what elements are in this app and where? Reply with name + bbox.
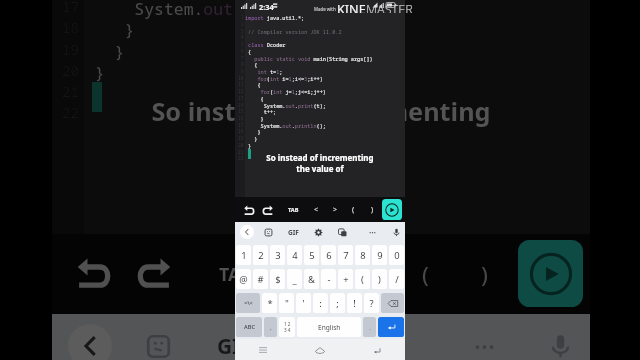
staticText: / — [395, 273, 399, 286]
button[interactable]: > — [328, 202, 342, 218]
button[interactable]: Settings — [311, 225, 325, 239]
button[interactable]: Home — [310, 342, 330, 358]
staticText: int t=1; — [245, 68, 283, 75]
staticText: So instead of incrementing — [266, 152, 374, 163]
button[interactable]: Recent apps — [253, 342, 273, 358]
staticText: + — [343, 273, 349, 286]
staticText: > — [333, 205, 338, 215]
staticText: > — [362, 259, 375, 289]
button[interactable]: 9 — [372, 245, 387, 265]
button[interactable]: ; — [330, 293, 345, 313]
staticText: . — [369, 324, 371, 331]
button[interactable]: < — [309, 202, 323, 218]
button[interactable]: - — [321, 269, 336, 289]
button[interactable]: ) — [365, 202, 379, 218]
button[interactable]: ) — [462, 248, 506, 299]
button[interactable]: Run code — [382, 199, 402, 220]
button[interactable]: More options — [365, 225, 379, 239]
staticText: - — [327, 273, 331, 286]
button[interactable]: GIF — [212, 324, 256, 360]
button[interactable]: Collapse toolbar — [240, 225, 254, 239]
staticText: 7 — [241, 55, 244, 61]
button[interactable]: ! — [347, 293, 362, 313]
button[interactable]: 0 — [389, 245, 404, 265]
staticText: 2 — [258, 249, 264, 262]
button[interactable]: Settings — [292, 324, 336, 360]
button[interactable]: TAB — [204, 248, 267, 299]
staticText: 5 — [309, 249, 315, 262]
staticText: * — [267, 297, 273, 310]
button[interactable]: $ — [270, 269, 285, 289]
staticText: 4 — [241, 34, 244, 40]
button[interactable]: 7 — [338, 245, 353, 265]
staticText: 6 — [241, 48, 244, 54]
button[interactable]: > — [346, 248, 390, 299]
staticText: } — [85, 40, 125, 62]
staticText: 8 — [360, 249, 366, 262]
button[interactable]: Undo — [241, 202, 257, 218]
button[interactable]: " — [279, 293, 294, 313]
button[interactable]: 8 — [355, 245, 370, 265]
staticText: ABC — [244, 323, 255, 331]
button[interactable]: Stickers — [136, 324, 180, 360]
button[interactable]: . — [363, 317, 376, 337]
button[interactable]: / — [389, 269, 404, 289]
button[interactable]: Run code — [518, 240, 583, 307]
staticText: < — [302, 259, 315, 289]
button[interactable]: Stickers — [261, 225, 275, 239]
staticText: $ — [275, 273, 281, 286]
button[interactable]: ' — [296, 293, 311, 313]
button[interactable]: # — [253, 269, 268, 289]
button[interactable]: 4 — [287, 245, 302, 265]
button[interactable]: & — [304, 269, 319, 289]
button[interactable]: ) — [372, 269, 387, 289]
button[interactable]: ( — [403, 248, 447, 299]
button[interactable]: 2 — [253, 245, 268, 265]
button[interactable]: More options — [462, 324, 506, 360]
staticText: English — [318, 323, 341, 332]
staticText: So instead of incrementing — [151, 94, 491, 128]
button[interactable]: Redo — [259, 202, 275, 218]
button[interactable]: =\< — [236, 293, 260, 313]
staticText: 6 — [326, 249, 332, 262]
staticText: & — [308, 273, 315, 286]
button[interactable]: English — [297, 317, 361, 337]
button[interactable]: Voice input — [389, 225, 403, 239]
staticText: 0 — [394, 249, 400, 262]
button[interactable]: TAB — [283, 202, 303, 218]
button[interactable]: @ — [236, 269, 251, 289]
button[interactable]: < — [286, 248, 330, 299]
button[interactable]: _ — [287, 269, 302, 289]
button[interactable]: ( — [355, 269, 370, 289]
button[interactable]: Translate — [367, 324, 411, 360]
button[interactable]: Collapse toolbar — [68, 324, 112, 360]
staticText: 3 4 — [284, 327, 291, 333]
staticText: # — [257, 273, 264, 286]
button[interactable]: ? — [364, 293, 379, 313]
button[interactable]: ABC — [236, 317, 262, 337]
staticText: KINE — [337, 1, 366, 13]
button[interactable]: : — [313, 293, 328, 313]
button[interactable]: 6 — [321, 245, 336, 265]
button[interactable]: Enter — [378, 317, 404, 337]
button[interactable]: + — [338, 269, 353, 289]
button[interactable]: GIF — [286, 225, 300, 239]
button[interactable]: Translate — [335, 225, 349, 239]
button[interactable]: * — [262, 293, 277, 313]
button[interactable]: 3 — [270, 245, 285, 265]
button[interactable]: Redo — [128, 248, 179, 299]
button[interactable]: Backspace — [381, 293, 404, 313]
staticText: 7 — [343, 249, 349, 262]
button[interactable]: 5 — [304, 245, 319, 265]
staticText: ! — [353, 297, 356, 310]
button[interactable]: ( — [346, 202, 360, 218]
button[interactable]: , — [264, 317, 277, 337]
button[interactable]: Voice input — [538, 324, 582, 360]
staticText: GIF — [217, 332, 252, 360]
button[interactable]: Undo — [69, 248, 120, 299]
button[interactable]: 1 — [236, 245, 251, 265]
button[interactable]: Numbers — [279, 317, 295, 337]
staticText: 13 — [238, 95, 244, 101]
button[interactable]: Back — [367, 342, 387, 358]
